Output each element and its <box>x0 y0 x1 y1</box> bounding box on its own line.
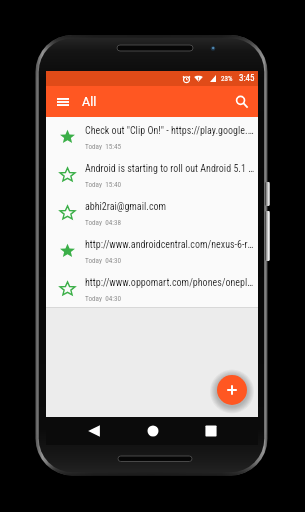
staticText: Today 15:45 <box>85 142 122 150</box>
button[interactable]: Back <box>81 417 107 445</box>
staticText: abhi2rai@gmail.com <box>85 201 167 213</box>
staticText: http://www.androidcentral.com/nexus-6-re… <box>85 239 256 251</box>
staticText: All <box>82 94 97 109</box>
staticText: Today 04:30 <box>85 256 122 264</box>
staticText: Today 04:30 <box>85 294 122 302</box>
button[interactable]: Android is starting to roll out Android … <box>46 155 258 193</box>
staticText: Today 04:38 <box>85 218 122 226</box>
staticText: Android is starting to roll out Android … <box>85 163 256 175</box>
button[interactable]: Add <box>217 375 247 405</box>
button[interactable]: http://www.androidcentral.com/nexus-6-re… <box>46 231 258 269</box>
button[interactable]: Check out "Clip On!" - https://play.goog… <box>46 117 258 155</box>
button[interactable]: http://www.oppomart.com/phones/oneplus-o… <box>46 269 258 307</box>
staticText: 3:45 <box>239 73 255 84</box>
staticText: Check out "Clip On!" - https://play.goog… <box>85 125 256 137</box>
staticText: Today 15:40 <box>85 180 122 188</box>
staticText: 23% <box>221 75 233 83</box>
button[interactable]: abhi2rai@gmail.com <box>46 193 258 231</box>
staticText: http://www.oppomart.com/phones/oneplus-o… <box>85 277 256 289</box>
button[interactable]: Home <box>140 417 166 445</box>
button[interactable]: Recents <box>198 417 224 445</box>
button[interactable]: Search <box>230 86 254 117</box>
button[interactable]: Menu <box>52 86 74 117</box>
